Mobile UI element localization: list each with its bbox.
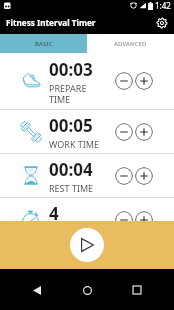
staticText: WORK TIME — [49, 138, 101, 150]
button[interactable]: 4 — [0, 198, 174, 241]
staticText: 1:42 — [155, 0, 171, 11]
button[interactable]: Increase — [135, 211, 153, 229]
button[interactable]: Decrease — [115, 72, 133, 90]
staticText: SETS — [49, 226, 101, 238]
button[interactable]: Recents — [124, 277, 150, 303]
button[interactable]: Back — [24, 277, 50, 303]
button[interactable]: 00:03 — [0, 53, 174, 109]
button[interactable]: Increase — [135, 72, 153, 90]
button[interactable]: ADVANCED — [87, 34, 174, 53]
staticText: ADVANCED — [114, 40, 147, 48]
button[interactable]: Decrease — [115, 167, 133, 185]
button[interactable]: Increase — [135, 167, 153, 185]
staticText: 00:04 — [49, 158, 93, 181]
button[interactable]: Decrease — [115, 123, 133, 141]
staticText: Fitness Interval Timer — [6, 17, 96, 28]
button[interactable]: 00:05 — [0, 110, 174, 153]
button[interactable]: Start — [70, 228, 104, 262]
button[interactable]: Increase — [135, 123, 153, 141]
staticText: 4 — [49, 202, 59, 225]
button[interactable]: 00:04 — [0, 154, 174, 197]
button[interactable]: Settings — [154, 15, 170, 31]
button[interactable]: Home — [74, 277, 100, 303]
staticText: 00:05 — [49, 114, 93, 137]
button[interactable]: Decrease — [115, 211, 133, 229]
staticText: PREPARE TIME — [49, 82, 101, 105]
button[interactable]: BASIC — [0, 34, 87, 53]
staticText: 00:03 — [49, 58, 93, 81]
staticText: REST TIME — [49, 182, 101, 194]
staticText: BASIC — [35, 40, 53, 48]
